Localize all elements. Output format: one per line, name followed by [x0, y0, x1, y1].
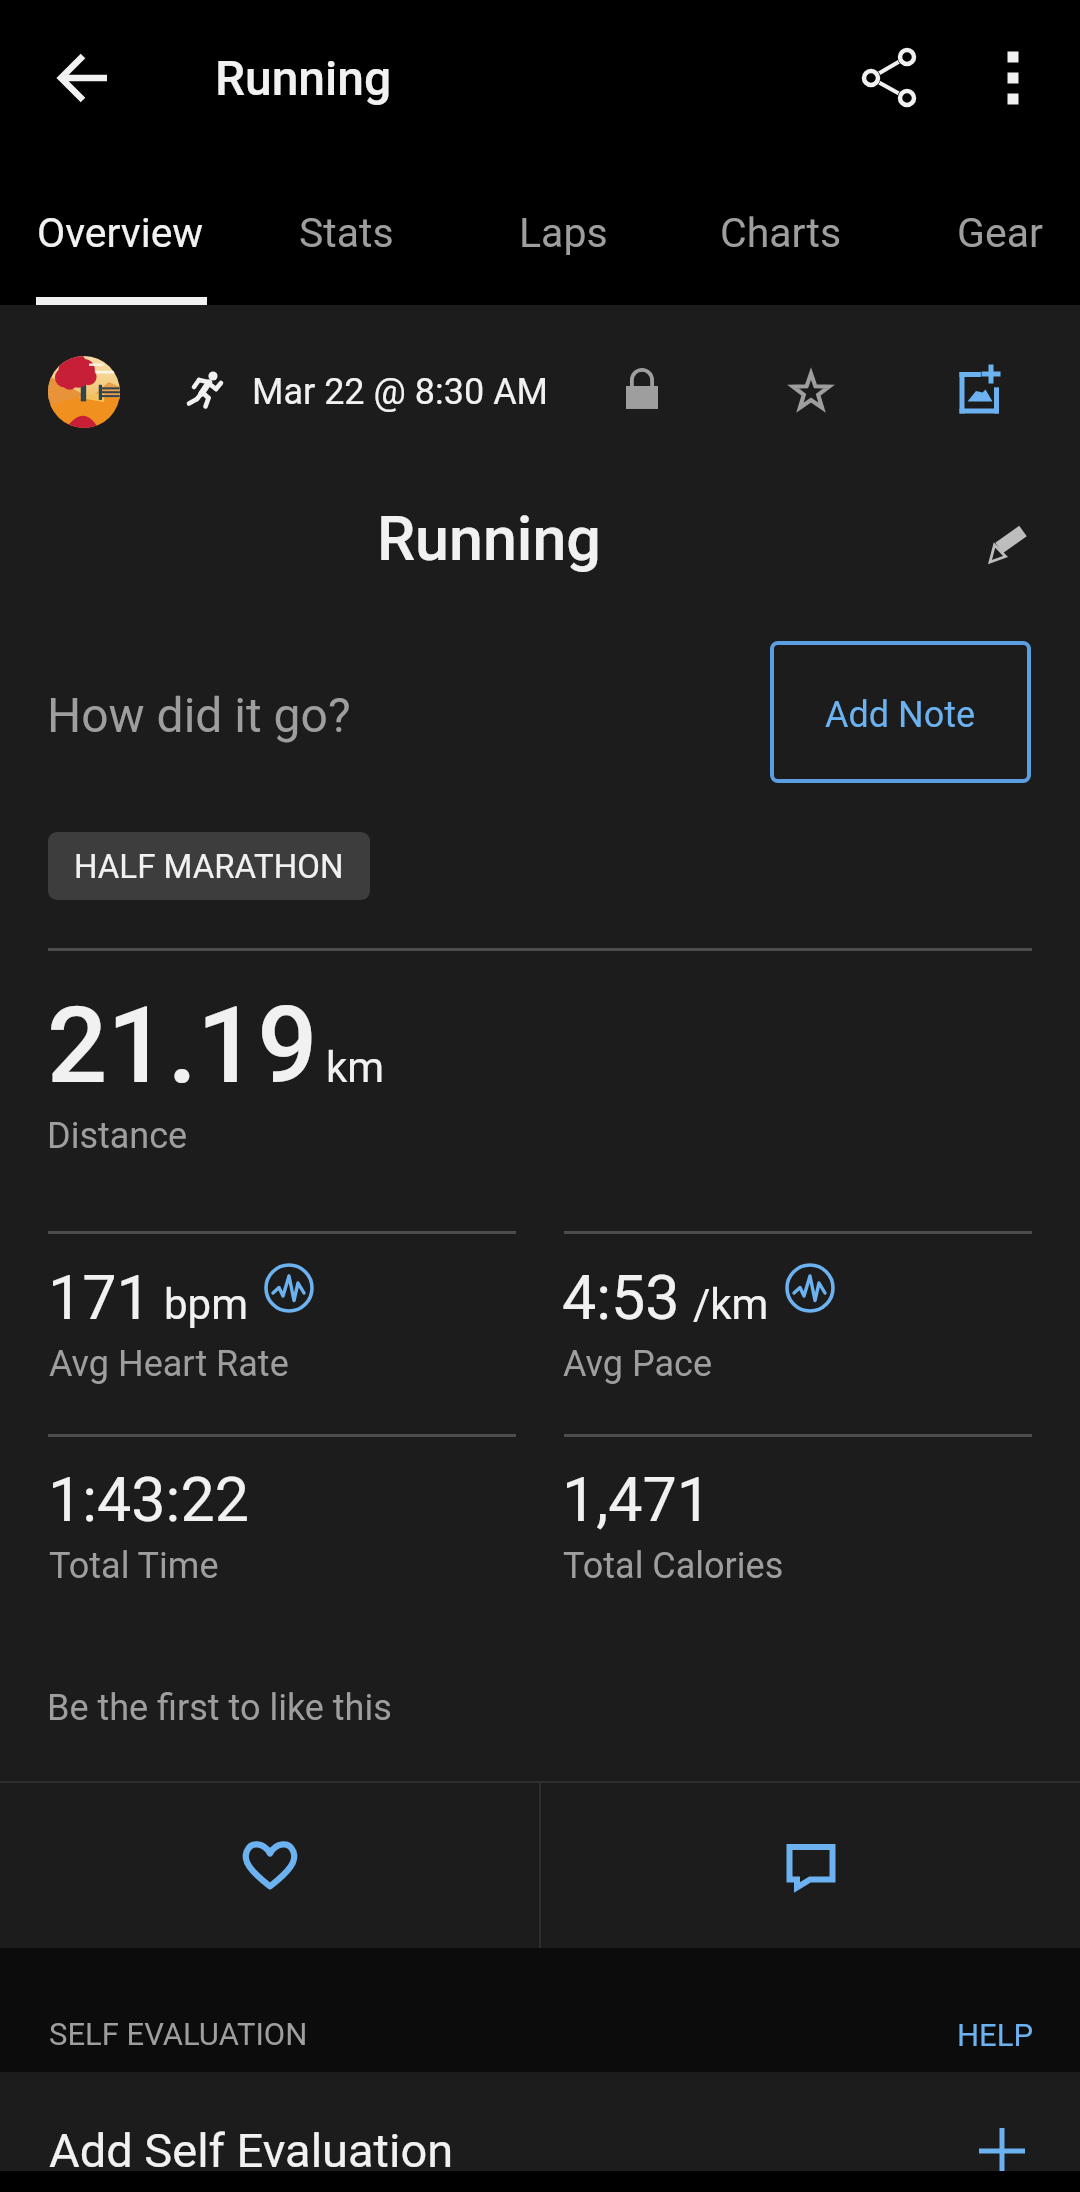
staticText: How did it go? — [47, 687, 351, 743]
staticText: SELF EVALUATION — [49, 2016, 308, 2052]
staticText: 171 — [48, 1262, 151, 1333]
button[interactable]: Back — [40, 34, 128, 122]
staticText: Charts — [720, 209, 842, 257]
button[interactable]: Privacy — [602, 352, 682, 432]
button[interactable]: HALF MARATHON — [48, 832, 370, 900]
button[interactable] — [11, 156, 232, 305]
staticText: Avg Pace — [563, 1343, 712, 1385]
button[interactable]: More options — [969, 34, 1057, 122]
staticText: 21.19 — [47, 984, 318, 1108]
button[interactable]: Profile — [48, 356, 120, 428]
staticText: Running — [377, 503, 601, 574]
staticText: 1:43:22 — [48, 1464, 249, 1535]
button[interactable] — [694, 156, 869, 305]
staticText: Distance — [47, 1115, 188, 1157]
button[interactable]: Comment — [541, 1783, 1080, 1948]
button[interactable]: Add Note — [770, 641, 1031, 783]
staticText: 4:53 — [562, 1262, 680, 1333]
button[interactable]: Share — [845, 34, 933, 122]
staticText: Stats — [299, 209, 394, 257]
staticText: Mar 22 @ 8:30 AM — [252, 371, 549, 413]
staticText: Avg Heart Rate — [49, 1343, 289, 1385]
staticText: HALF MARATHON — [74, 847, 344, 886]
button[interactable] — [931, 156, 1071, 305]
button[interactable]: Add photo — [937, 352, 1017, 432]
staticText: Laps — [519, 209, 608, 257]
staticText: HELP — [957, 2017, 1033, 2053]
staticText: /km — [693, 1280, 769, 1329]
staticText: Add Self Evaluation — [49, 2123, 454, 2178]
staticText: Running — [215, 50, 392, 106]
staticText: Add Note — [825, 694, 976, 736]
staticText: Gear — [957, 209, 1043, 257]
button[interactable] — [0, 2072, 1080, 2174]
staticText: Total Time — [49, 1545, 219, 1587]
staticText: 1,471 — [562, 1464, 712, 1535]
button[interactable]: Edit — [968, 503, 1048, 583]
button[interactable] — [493, 156, 636, 305]
staticText: Be the first to like this — [47, 1687, 392, 1729]
staticText: Total Calories — [563, 1545, 784, 1587]
button[interactable]: HELP — [940, 2000, 1050, 2070]
staticText: Overview — [37, 209, 204, 257]
button[interactable]: Like — [0, 1783, 540, 1948]
staticText: bpm — [164, 1280, 248, 1329]
button[interactable] — [273, 156, 429, 305]
staticText: km — [326, 1043, 385, 1092]
button[interactable]: Favorite — [771, 352, 851, 432]
